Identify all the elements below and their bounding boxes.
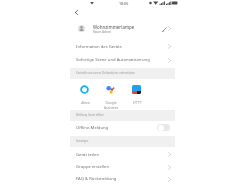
staticText: Offline-Meldung (76, 125, 109, 131)
staticText: Meldung Gerät offline (76, 113, 104, 117)
button[interactable] (73, 84, 97, 108)
button[interactable] (70, 173, 175, 185)
staticText: Gruppe erstellen (76, 164, 110, 170)
button[interactable] (70, 121, 175, 134)
button[interactable] (70, 161, 175, 173)
button[interactable] (70, 54, 175, 66)
staticText: IFTTT (133, 100, 142, 104)
button[interactable] (70, 40, 175, 52)
staticText: Information des Geräts (76, 44, 122, 50)
button[interactable]: Edit name (160, 25, 168, 33)
staticText: Sonstiges (76, 139, 89, 143)
button[interactable] (70, 149, 175, 161)
staticText: Raum Action (93, 30, 111, 34)
staticText: Sofortige Szene und Automatisierung (76, 57, 150, 63)
staticText: 18:06 (119, 1, 129, 6)
button[interactable]: Offline-Meldung (157, 124, 170, 131)
staticText: Gerät teilen (76, 152, 99, 158)
button[interactable] (70, 22, 175, 37)
staticText: Alexa (81, 100, 90, 104)
staticText: Wohnzimmerlampe (93, 24, 135, 30)
button[interactable]: Back (70, 6, 82, 18)
button[interactable] (99, 84, 123, 108)
staticText: Kontrolle aus einem Drittanbieter unters… (76, 71, 136, 75)
button[interactable] (125, 84, 149, 108)
staticText: FAQ & Rückmeldung (76, 176, 117, 182)
staticText: Google Assistent (100, 100, 122, 110)
